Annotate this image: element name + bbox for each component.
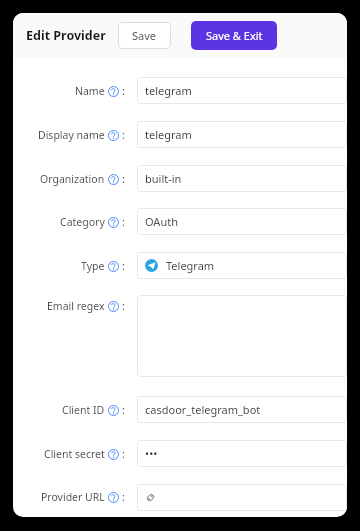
staticText: :: [122, 259, 125, 273]
staticText: Name: [75, 84, 105, 98]
button[interactable]: telegram: [137, 77, 347, 104]
staticText: :: [122, 447, 125, 461]
staticText: built-in: [145, 171, 182, 186]
staticText: Save: [132, 28, 157, 43]
staticText: Save & Exit: [206, 28, 263, 43]
button[interactable]: built-in: [137, 165, 347, 192]
staticText: Display name: [38, 128, 105, 142]
button[interactable]: Provider URL: [137, 484, 347, 511]
staticText: telegram: [145, 83, 192, 98]
button[interactable]: Save & Exit: [191, 21, 277, 50]
staticText: :: [122, 490, 125, 504]
staticText: Type: [81, 259, 105, 273]
staticText: Email regex: [47, 299, 105, 313]
button[interactable]: Telegram: [137, 252, 347, 279]
staticText: :: [122, 172, 125, 186]
staticText: :: [122, 215, 125, 229]
staticText: :: [122, 84, 125, 98]
staticText: OAuth: [145, 214, 178, 229]
button[interactable]: •••: [137, 440, 347, 467]
staticText: telegram: [145, 127, 192, 142]
staticText: Edit Provider: [26, 27, 106, 44]
button[interactable]: casdoor_telegram_bot: [137, 396, 347, 423]
staticText: :: [122, 128, 125, 142]
button[interactable]: OAuth: [137, 208, 347, 235]
staticText: Category: [60, 215, 105, 229]
staticText: :: [122, 403, 125, 417]
button[interactable]: telegram: [137, 121, 347, 148]
button[interactable]: Email regex: [137, 295, 347, 377]
button[interactable]: Save: [118, 22, 171, 49]
staticText: Client ID: [62, 403, 105, 417]
staticText: :: [122, 299, 125, 313]
staticText: casdoor_telegram_bot: [145, 402, 261, 417]
staticText: •••: [145, 446, 158, 461]
staticText: Telegram: [166, 258, 215, 273]
staticText: Client secret: [44, 447, 105, 461]
staticText: Organization: [40, 172, 105, 186]
staticText: Provider URL: [41, 490, 105, 504]
